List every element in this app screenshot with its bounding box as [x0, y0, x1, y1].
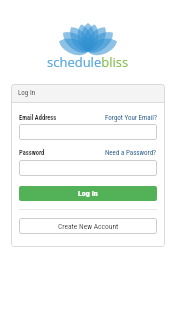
button[interactable]: Need a Password? [105, 149, 157, 157]
staticText: Email Address [19, 114, 57, 122]
staticText: Create New Account [58, 222, 119, 231]
staticText: Log In [18, 89, 36, 97]
button[interactable]: Forgot Your Email? [105, 114, 157, 122]
staticText: Log In [78, 189, 98, 198]
button[interactable] [19, 160, 157, 176]
button[interactable]: Log In [19, 186, 157, 201]
button[interactable]: Create New Account [19, 218, 157, 234]
staticText: Password [19, 149, 45, 157]
staticText: schedulebliss [47, 53, 129, 71]
button[interactable] [19, 124, 157, 140]
